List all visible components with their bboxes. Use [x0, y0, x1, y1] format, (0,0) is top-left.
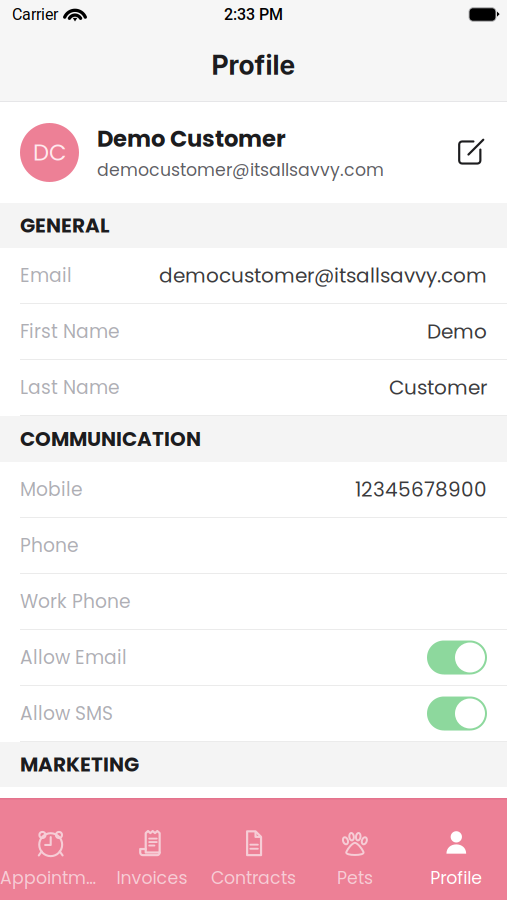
staticText: democustomer@itsallsavvy.com	[159, 261, 487, 289]
staticText: Invoices	[117, 866, 188, 890]
button[interactable]: Last Name	[0, 360, 507, 416]
staticText: Work Phone	[20, 588, 131, 614]
staticText: Contracts	[211, 866, 296, 890]
button[interactable]: Appointme…	[0, 798, 101, 900]
staticText: Last Name	[20, 374, 120, 400]
button[interactable]: Edit profile	[434, 102, 507, 203]
staticText: Profile	[430, 866, 482, 890]
staticText: Profile	[211, 49, 295, 81]
staticText: Email	[20, 262, 72, 288]
staticText: Mobile	[20, 476, 83, 502]
staticText: GENERAL	[20, 211, 110, 239]
button[interactable]: First Name	[0, 304, 507, 360]
staticText: Pets	[337, 866, 373, 890]
staticText: democustomer@itsallsavvy.com	[97, 158, 384, 182]
staticText: Customer	[389, 373, 487, 401]
button[interactable]: Email	[0, 248, 507, 304]
staticText: Carrier	[12, 5, 58, 24]
button[interactable]: Contracts	[203, 798, 304, 900]
staticText: MARKETING	[20, 750, 139, 778]
staticText: Allow SMS	[20, 700, 113, 726]
staticText: Phone	[20, 532, 79, 558]
staticText: 2:33 PM	[224, 5, 283, 24]
staticText: COMMUNICATION	[20, 425, 201, 453]
button[interactable]: Pets	[304, 798, 406, 900]
button[interactable]: Work Phone	[0, 574, 507, 630]
button[interactable]: Invoices	[101, 798, 203, 900]
staticText: Appointme…	[0, 866, 101, 890]
staticText: 12345678900	[355, 475, 487, 503]
staticText: Allow Email	[20, 644, 127, 670]
staticText: Demo Customer	[97, 123, 286, 155]
button[interactable]: Allow SMS	[0, 686, 507, 742]
staticText: Demo	[427, 317, 487, 345]
button[interactable]: Mobile	[0, 462, 507, 518]
button[interactable]: Profile	[406, 798, 507, 900]
button[interactable]: Allow Email	[0, 630, 507, 686]
button[interactable]: Phone	[0, 518, 507, 574]
staticText: DC	[33, 137, 66, 168]
staticText: First Name	[20, 318, 120, 344]
